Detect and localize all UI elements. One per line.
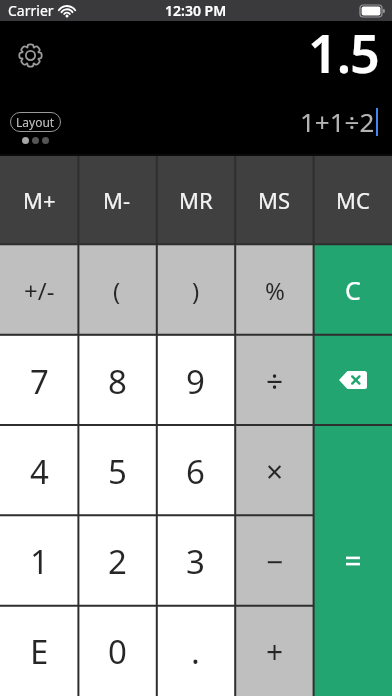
button[interactable]: 3 bbox=[156, 516, 235, 606]
staticText: 12:30 PM bbox=[165, 1, 227, 20]
staticText: 0 bbox=[108, 629, 127, 674]
button[interactable]: +/- bbox=[0, 245, 78, 336]
staticText: + bbox=[266, 631, 284, 672]
staticText: 3 bbox=[186, 539, 205, 584]
staticText: 2 bbox=[108, 539, 127, 584]
button[interactable]: 0 bbox=[78, 606, 156, 696]
button[interactable]: 1 bbox=[0, 516, 78, 606]
staticText: MS bbox=[258, 185, 291, 215]
button[interactable]: ÷ bbox=[235, 336, 314, 426]
button[interactable]: MS bbox=[235, 154, 314, 245]
button[interactable]: . bbox=[156, 606, 235, 696]
button[interactable]: 8 bbox=[78, 336, 156, 426]
button[interactable]: M- bbox=[78, 154, 156, 245]
staticText: 7 bbox=[30, 359, 49, 404]
button[interactable]: − bbox=[235, 516, 314, 606]
staticText: 1.5 bbox=[308, 17, 379, 88]
staticText: +/- bbox=[24, 274, 55, 307]
button[interactable] bbox=[314, 425, 392, 696]
staticText: ) bbox=[192, 274, 200, 307]
staticText: 4 bbox=[30, 449, 49, 494]
button[interactable]: ) bbox=[156, 245, 235, 336]
button[interactable]: ( bbox=[78, 245, 156, 336]
staticText: 8 bbox=[108, 359, 127, 404]
staticText: − bbox=[266, 541, 284, 582]
staticText: Carrier bbox=[8, 1, 54, 20]
button[interactable]: + bbox=[235, 606, 314, 696]
staticText: . bbox=[191, 629, 200, 674]
staticText: MR bbox=[179, 185, 213, 215]
staticText: × bbox=[266, 451, 284, 492]
staticText: % bbox=[265, 274, 285, 307]
staticText: M+ bbox=[23, 185, 56, 215]
staticText: 1 bbox=[30, 539, 49, 584]
button[interactable]: MC bbox=[314, 154, 392, 245]
button[interactable]: 4 bbox=[0, 426, 78, 516]
button[interactable]: Layout bbox=[10, 112, 61, 132]
staticText: ( bbox=[113, 274, 121, 307]
staticText: 1+1÷2 bbox=[300, 104, 375, 139]
staticText: M- bbox=[103, 185, 131, 215]
button[interactable] bbox=[314, 335, 392, 425]
staticText: 6 bbox=[186, 449, 205, 494]
button[interactable]: × bbox=[235, 426, 314, 516]
button[interactable]: MR bbox=[156, 154, 235, 245]
button[interactable]: 9 bbox=[156, 336, 235, 426]
button[interactable]: 2 bbox=[78, 516, 156, 606]
button[interactable]: E bbox=[0, 606, 78, 696]
staticText: MC bbox=[336, 185, 370, 215]
button[interactable]: C bbox=[314, 245, 392, 335]
button[interactable]: M+ bbox=[0, 154, 78, 245]
staticText: Layout bbox=[16, 114, 55, 130]
staticText: 5 bbox=[108, 449, 127, 494]
button[interactable]: % bbox=[235, 245, 314, 336]
button[interactable]: 6 bbox=[156, 426, 235, 516]
staticText: E bbox=[30, 629, 49, 674]
button[interactable] bbox=[17, 42, 44, 69]
button[interactable]: 5 bbox=[78, 426, 156, 516]
staticText: C bbox=[345, 273, 361, 307]
staticText: ÷ bbox=[266, 361, 284, 402]
button[interactable]: 7 bbox=[0, 336, 78, 426]
staticText: 9 bbox=[186, 359, 205, 404]
